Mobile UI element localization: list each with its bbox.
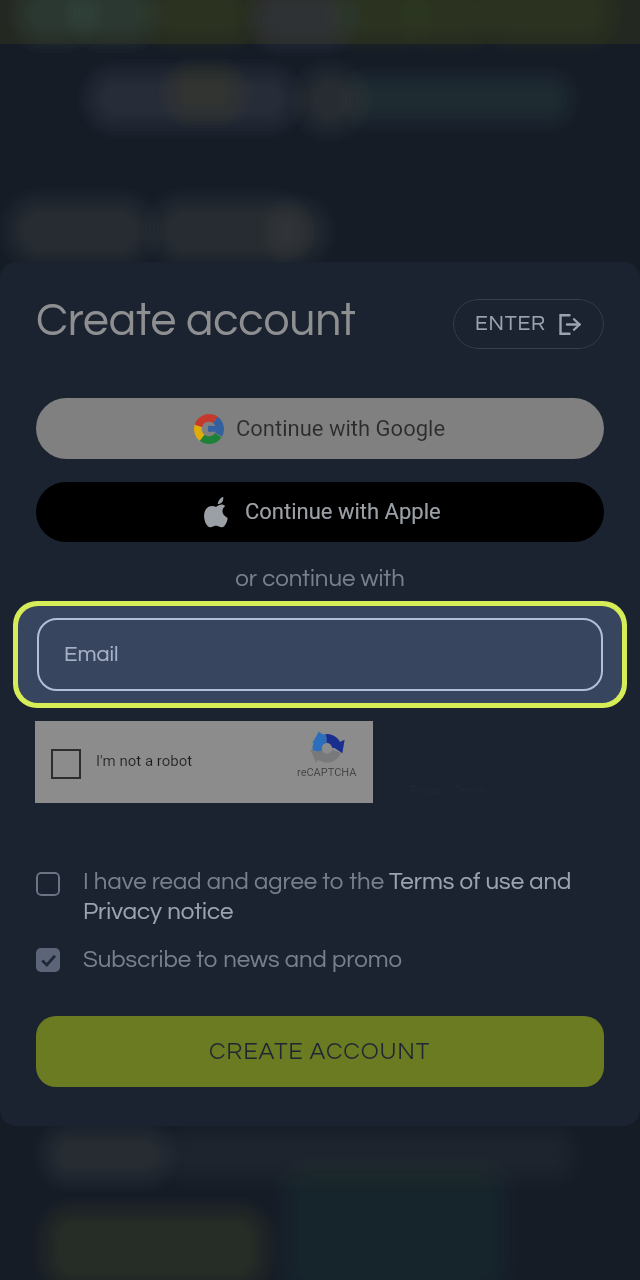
staticText: I'm not a robot [96,752,193,770]
staticText: CREATE ACCOUNT [209,1039,431,1064]
staticText: Subscribe to news and promo [83,947,403,972]
staticText: Email [64,643,119,666]
staticText: I have read and agree to the Terms of us… [83,869,604,924]
button[interactable]: Continue with Apple [36,482,604,542]
button[interactable]: I'm not a robot [35,721,373,803]
button[interactable]: ENTER [453,299,604,349]
staticText: reCAPTCHA [297,766,357,779]
button[interactable]: CREATE ACCOUNT [36,1016,604,1087]
staticText: or continue with [0,566,640,591]
button[interactable]: Email [18,606,622,703]
staticText: Continue with Google [236,416,446,442]
button[interactable]: Subscribe to news and promo [36,947,604,972]
staticText: Continue with Apple [245,499,441,525]
button[interactable]: I have read and agree to the Terms of us… [36,869,604,924]
staticText: ENTER [475,313,546,335]
button[interactable]: Continue with Google [36,398,604,459]
staticText: Create account [36,297,356,344]
